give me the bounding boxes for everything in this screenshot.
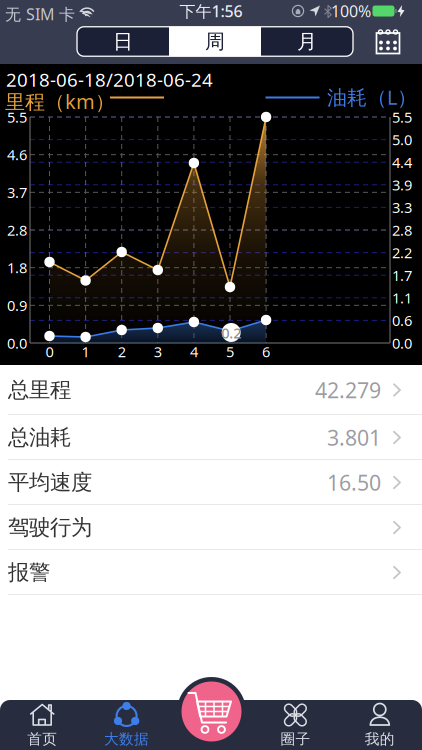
staticText: 2.2: [392, 243, 412, 262]
staticText: 0: [45, 342, 53, 361]
staticText: 0.2: [221, 323, 241, 343]
staticText: 2018-06-18/2018-06-24: [6, 67, 213, 92]
staticText: 3.7: [7, 183, 27, 202]
staticText: 驾驶行为: [8, 514, 92, 541]
button[interactable]: Cart: [177, 677, 246, 746]
staticText: 5.5: [392, 107, 412, 127]
staticText: 总油耗: [8, 424, 71, 451]
button[interactable]: Calendar: [371, 26, 404, 59]
staticText: 2.8: [7, 220, 27, 240]
staticText: 报警: [8, 559, 50, 586]
button[interactable]: 首页: [0, 701, 84, 749]
staticText: 里程（km）: [5, 88, 115, 115]
staticText: 0.9: [7, 296, 27, 315]
staticText: 0.0: [392, 333, 412, 353]
button[interactable]: 周: [169, 27, 261, 56]
staticText: 100%: [331, 0, 371, 22]
button[interactable]: 总油耗: [0, 415, 422, 460]
staticText: 4.6: [7, 145, 27, 164]
staticText: 首页: [27, 730, 57, 748]
staticText: 4.4: [392, 152, 412, 172]
staticText: 5.5: [7, 107, 27, 127]
staticText: 5.0: [392, 130, 412, 149]
staticText: 16.50: [327, 468, 381, 497]
staticText: 我的: [365, 730, 395, 748]
button[interactable]: 报警: [0, 550, 422, 595]
staticText: 4: [190, 342, 198, 361]
staticText: 0.0: [7, 333, 27, 353]
staticText: 1.8: [7, 258, 27, 277]
staticText: 3: [154, 342, 162, 361]
staticText: 2.8: [392, 220, 412, 240]
button[interactable]: 驾驶行为: [0, 505, 422, 550]
staticText: 平均速度: [8, 469, 92, 496]
button[interactable]: 大数据: [85, 701, 169, 749]
button[interactable]: 圈子: [253, 701, 337, 749]
staticText: 大数据: [104, 730, 149, 748]
staticText: 3.801: [327, 423, 381, 452]
staticText: 3.3: [392, 198, 412, 217]
staticText: 0.6: [392, 311, 412, 330]
staticText: 月: [297, 29, 317, 54]
staticText: 总里程: [8, 377, 71, 403]
button[interactable]: 我的: [338, 701, 422, 749]
staticText: 1.1: [392, 288, 412, 308]
staticText: 3.9: [392, 175, 412, 195]
staticText: 周: [205, 29, 225, 54]
staticText: 日: [113, 29, 133, 54]
staticText: 1: [82, 342, 90, 361]
staticText: 油耗（L）: [327, 84, 417, 110]
staticText: 2: [118, 342, 126, 361]
button[interactable]: 月: [261, 27, 353, 56]
staticText: 1.7: [392, 265, 412, 285]
staticText: 42.279: [315, 376, 381, 404]
staticText: 5: [226, 342, 234, 361]
staticText: 圈子: [280, 730, 310, 748]
button[interactable]: 日: [77, 27, 169, 56]
staticText: 6: [262, 342, 270, 361]
staticText: 下午1:56: [179, 0, 242, 22]
staticText: 无 SIM 卡: [5, 3, 75, 25]
button[interactable]: 平均速度: [0, 460, 422, 505]
button[interactable]: 总里程: [0, 365, 422, 415]
